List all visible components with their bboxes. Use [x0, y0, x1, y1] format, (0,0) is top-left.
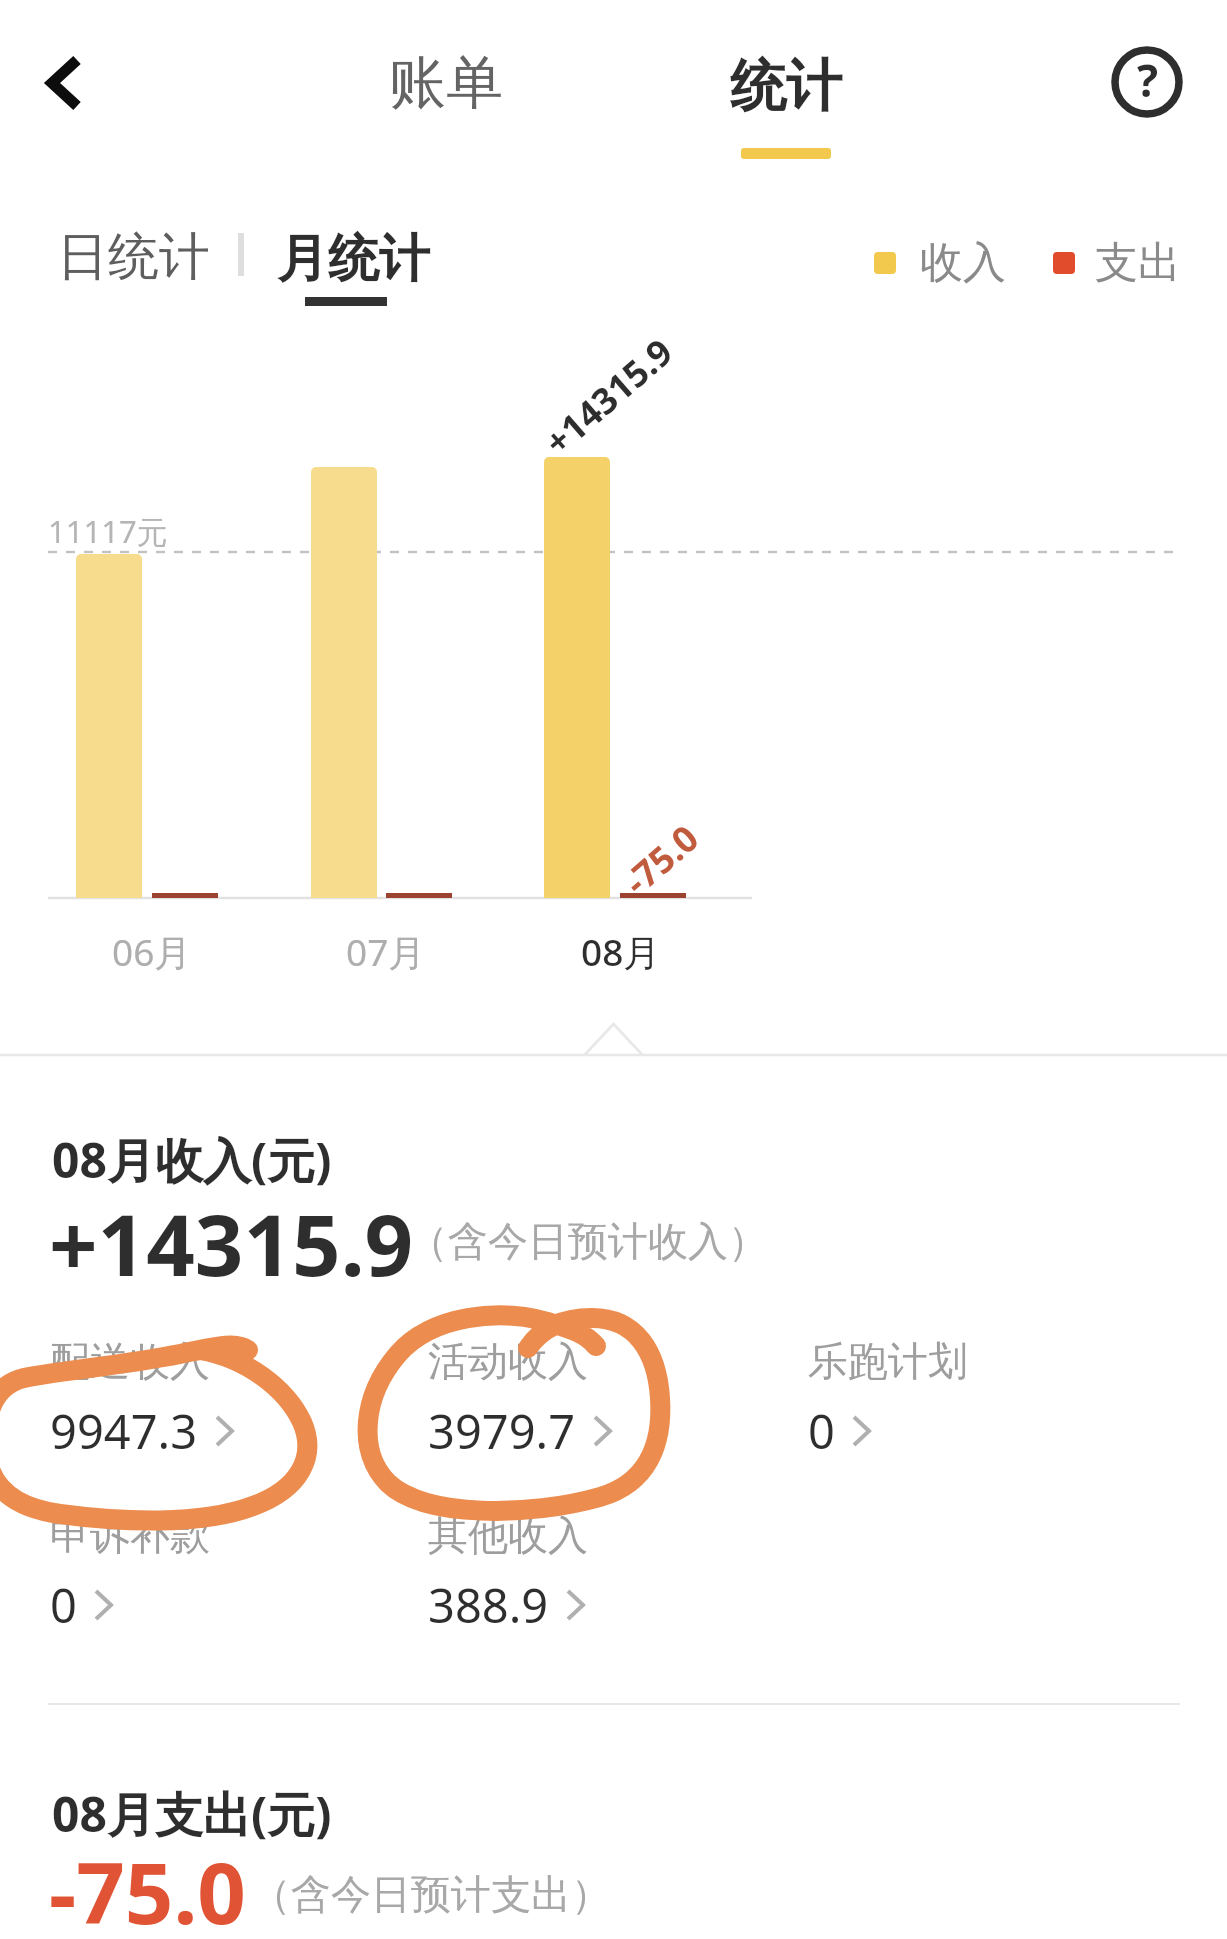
button[interactable]: 配送收入 [50, 1336, 390, 1488]
staticText: 08月 [581, 926, 661, 977]
staticText: 活动收入 [428, 1336, 588, 1386]
staticText: 388.9 [428, 1573, 549, 1637]
staticText: 月统计 [277, 227, 430, 291]
staticText: 配送收入 [50, 1336, 210, 1386]
staticText: 3979.7 [428, 1399, 576, 1463]
button[interactable]: 账单 [336, 33, 556, 133]
staticText: 9947.3 [50, 1399, 198, 1463]
staticText: 08月支出(元) [52, 1781, 332, 1847]
staticText: +14315.9 [534, 327, 683, 466]
button[interactable]: 统计 [676, 36, 896, 176]
button[interactable]: 活动收入 [428, 1336, 768, 1488]
staticText: 账单 [389, 47, 503, 119]
staticText: ? [1137, 50, 1158, 110]
staticText: 0 [50, 1573, 77, 1637]
staticText: 支出 [1095, 236, 1181, 290]
button[interactable]: 申诉补款 [50, 1510, 390, 1662]
staticText: 07月 [346, 926, 426, 977]
staticText: 日统计 [57, 225, 210, 289]
staticText: 统计 [730, 51, 842, 122]
staticText: （含今日预计支出） [251, 1869, 611, 1919]
button[interactable]: Back [14, 37, 106, 129]
button[interactable]: 月统计 [252, 217, 444, 321]
staticText: 06月 [112, 926, 192, 977]
staticText: （含今日预计收入） [408, 1216, 768, 1266]
staticText: +14315.9 [49, 1185, 414, 1301]
staticText: 乐跑计划 [808, 1336, 968, 1386]
staticText: 0 [808, 1399, 835, 1463]
staticText: 08月收入(元) [52, 1127, 332, 1193]
staticText: 收入 [920, 236, 1006, 290]
button[interactable]: 日统计 [28, 215, 181, 299]
staticText: -75.0 [49, 1833, 246, 1939]
staticText: 其他收入 [428, 1510, 588, 1560]
button[interactable]: 08月 [567, 918, 647, 969]
button[interactable]: 06月 [98, 918, 178, 969]
button[interactable] [0, 1020, 1227, 1080]
button[interactable]: 其他收入 [428, 1510, 768, 1662]
staticText: 11117元 [48, 510, 168, 552]
staticText: 申诉补款 [50, 1510, 210, 1560]
button[interactable]: 乐跑计划 [808, 1336, 1148, 1488]
button[interactable]: Help [1101, 36, 1193, 128]
staticText: -75.0 [613, 813, 709, 906]
button[interactable]: 07月 [332, 918, 412, 969]
